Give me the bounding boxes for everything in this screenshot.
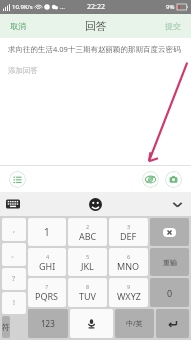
button[interactable]: 7 [28, 278, 66, 307]
staticText: PQRS [35, 290, 59, 302]
staticText: 4 [46, 253, 50, 260]
staticText: DEF [120, 230, 137, 242]
staticText: 重输 [163, 258, 177, 267]
button[interactable]: Camera [165, 171, 182, 188]
staticText: 提交 [165, 21, 181, 31]
staticText: MNO [117, 260, 140, 272]
button[interactable]: 求向往的生活4.09十三期有赵丽颖的那期百度云密码 [8, 44, 183, 54]
button[interactable]: 添加回答 [8, 66, 183, 165]
button[interactable]: 符 [2, 316, 10, 338]
button[interactable]: 中/英 [115, 309, 154, 338]
staticText: , [13, 225, 15, 235]
staticText: ABC [79, 230, 97, 242]
button[interactable]: Keyboard switch [6, 197, 20, 211]
staticText: 取消 [10, 21, 26, 31]
staticText: WXYZ [117, 290, 141, 302]
button[interactable]: Key [70, 309, 113, 338]
staticText: 22:22 [87, 2, 105, 12]
button[interactable]: ? [2, 268, 26, 290]
staticText: 求向往的生活4.09十三期有赵丽颖的那期百度云密码 [8, 44, 181, 54]
staticText: 5 [86, 253, 90, 260]
staticText: 7 [45, 283, 49, 290]
button[interactable]: Preview [142, 171, 159, 188]
button[interactable]: 提交 [155, 17, 191, 35]
button[interactable]: ! [2, 292, 26, 314]
button[interactable]: 9 [109, 278, 148, 307]
staticText: ... [60, 3, 65, 11]
staticText: ? [12, 274, 16, 284]
button[interactable]: 取消 [0, 17, 36, 35]
staticText: GHI [39, 260, 56, 272]
button[interactable]: 0 [150, 278, 189, 307]
button[interactable]: 。 [2, 243, 26, 266]
button[interactable]: Key [156, 309, 189, 338]
staticText: 3 [127, 223, 131, 230]
button[interactable]: 2 [68, 218, 107, 246]
button[interactable]: 4 [28, 248, 66, 276]
staticText: JKL [81, 260, 94, 272]
button[interactable]: 8 [68, 278, 107, 307]
staticText: 1 [44, 225, 50, 239]
button[interactable]: Key [150, 218, 189, 246]
staticText: 10.9K/s [12, 3, 33, 11]
staticText: 回答 [85, 19, 107, 33]
staticText: 。 [11, 250, 18, 259]
staticText: 符 [2, 322, 10, 332]
button[interactable]: 5 [68, 248, 107, 276]
staticText: ! [13, 298, 15, 308]
staticText: 添加回答 [8, 66, 38, 75]
staticText: 9% [166, 3, 175, 11]
staticText: 0 [167, 287, 173, 299]
staticText: TUV [79, 290, 96, 302]
staticText: 123 [41, 318, 55, 329]
button[interactable]: Hide keyboard [171, 198, 184, 211]
staticText: 8 [86, 283, 90, 290]
staticText: 中/英 [126, 319, 143, 329]
staticText: 2 [86, 223, 90, 230]
button[interactable]: Format list [9, 171, 26, 188]
button[interactable]: 重输 [150, 248, 189, 276]
button[interactable]: , [2, 218, 26, 241]
button[interactable]: 123 [28, 309, 68, 338]
staticText: 6 [127, 253, 131, 260]
staticText: 9 [127, 283, 131, 290]
button[interactable]: 3 [109, 218, 148, 246]
button[interactable]: 1 [28, 218, 66, 246]
button[interactable]: 6 [109, 248, 148, 276]
button[interactable]: Emoji [89, 198, 102, 211]
